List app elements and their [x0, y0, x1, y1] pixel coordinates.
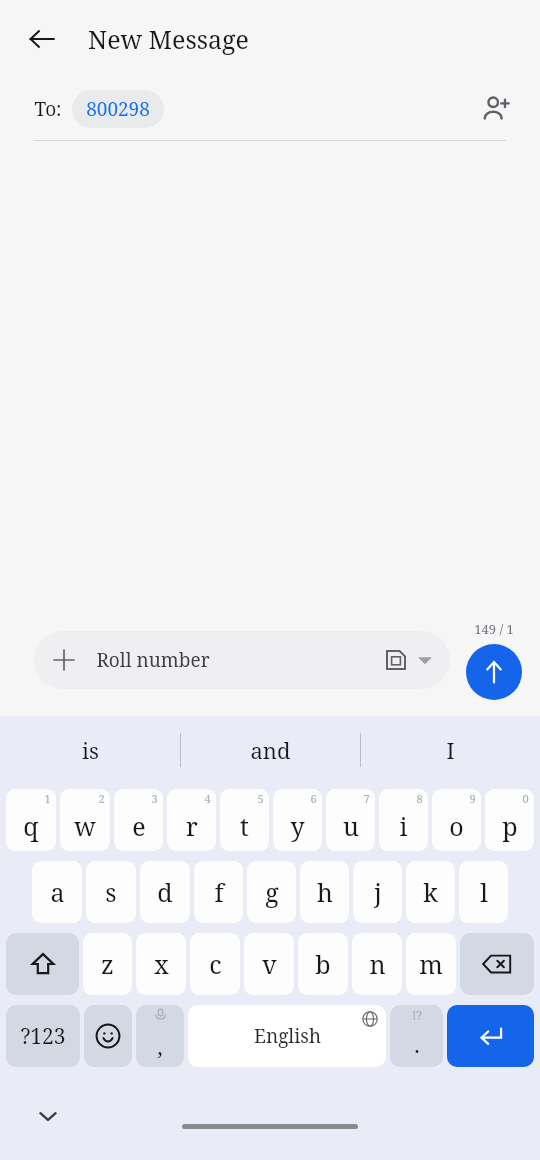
button[interactable]: x: [136, 933, 186, 995]
staticText: s: [105, 875, 117, 909]
button[interactable]: g: [247, 861, 296, 923]
button[interactable]: m: [406, 933, 456, 995]
button[interactable]: 0: [485, 789, 534, 851]
button[interactable]: Back: [18, 15, 66, 63]
staticText: y: [290, 809, 305, 843]
staticText: d: [157, 875, 173, 909]
button[interactable]: f: [194, 861, 243, 923]
staticText: i: [399, 809, 408, 843]
staticText: m: [419, 947, 443, 981]
staticText: v: [262, 947, 277, 981]
button[interactable]: d: [140, 861, 190, 923]
button[interactable]: 8: [379, 789, 428, 851]
button[interactable]: and: [181, 716, 360, 784]
staticText: 1: [44, 791, 51, 806]
staticText: !?: [412, 1007, 422, 1023]
staticText: h: [317, 875, 333, 909]
button[interactable]: Period: [390, 1005, 443, 1067]
staticText: 8: [416, 791, 423, 806]
staticText: 9: [469, 791, 476, 806]
button[interactable]: k: [406, 861, 455, 923]
staticText: g: [265, 875, 279, 909]
button[interactable]: z: [83, 933, 132, 995]
button[interactable]: 3: [114, 789, 163, 851]
staticText: q: [23, 809, 39, 843]
staticText: is: [82, 735, 99, 765]
button[interactable]: 7: [326, 789, 375, 851]
staticText: 3: [151, 791, 158, 806]
staticText: f: [214, 875, 224, 909]
staticText: n: [369, 947, 386, 981]
staticText: j: [374, 875, 382, 909]
staticText: t: [240, 809, 249, 843]
staticText: e: [132, 809, 146, 843]
button[interactable]: 4: [167, 789, 216, 851]
staticText: Roll number: [96, 647, 210, 673]
button[interactable]: s: [86, 861, 136, 923]
staticText: a: [50, 875, 65, 909]
button[interactable]: 800298: [72, 90, 164, 128]
staticText: 800298: [86, 96, 150, 122]
button[interactable]: b: [298, 933, 348, 995]
staticText: u: [343, 809, 359, 843]
button[interactable]: l: [459, 861, 508, 923]
staticText: ,: [157, 1031, 163, 1061]
button[interactable]: Emoji: [84, 1005, 132, 1067]
button[interactable]: Backspace: [460, 933, 534, 995]
button[interactable]: Comma, voice input: [136, 1005, 184, 1067]
staticText: 7: [363, 791, 370, 806]
button[interactable]: is: [0, 716, 180, 784]
button[interactable]: Roll number: [34, 631, 450, 689]
staticText: 6: [310, 791, 317, 806]
staticText: I: [446, 735, 455, 765]
staticText: 149 / 1: [474, 620, 514, 638]
staticText: ?123: [20, 1022, 66, 1051]
staticText: New Message: [88, 22, 249, 56]
staticText: English: [254, 1023, 321, 1049]
staticText: z: [101, 947, 114, 981]
button[interactable]: h: [300, 861, 349, 923]
button[interactable]: j: [353, 861, 402, 923]
button[interactable]: Add contact: [474, 87, 518, 131]
button[interactable]: a: [32, 861, 82, 923]
staticText: b: [315, 947, 331, 981]
button[interactable]: 9: [432, 789, 481, 851]
button[interactable]: ?123: [6, 1005, 80, 1067]
button[interactable]: Shift: [6, 933, 79, 995]
staticText: w: [74, 809, 96, 843]
button[interactable]: 6: [273, 789, 322, 851]
button[interactable]: Send: [466, 644, 522, 700]
button[interactable]: 5: [220, 789, 269, 851]
staticText: r: [186, 809, 198, 843]
button[interactable]: English: [188, 1005, 386, 1067]
button[interactable]: I: [361, 716, 540, 784]
staticText: .: [414, 1029, 420, 1059]
button[interactable]: 1: [6, 789, 56, 851]
staticText: 5: [257, 791, 264, 806]
staticText: p: [502, 809, 518, 843]
button[interactable]: 2: [60, 789, 110, 851]
staticText: x: [154, 947, 169, 981]
button[interactable]: v: [244, 933, 294, 995]
staticText: c: [209, 947, 222, 981]
staticText: and: [250, 735, 291, 765]
staticText: 4: [204, 791, 211, 806]
staticText: 2: [98, 791, 105, 806]
staticText: 0: [522, 791, 529, 806]
button[interactable]: c: [190, 933, 240, 995]
staticText: l: [480, 875, 488, 909]
staticText: To:: [34, 96, 62, 122]
button[interactable]: n: [352, 933, 402, 995]
staticText: o: [449, 809, 464, 843]
button[interactable]: Enter: [447, 1005, 534, 1067]
staticText: k: [423, 875, 438, 909]
button[interactable]: Hide keyboard: [28, 1096, 68, 1136]
